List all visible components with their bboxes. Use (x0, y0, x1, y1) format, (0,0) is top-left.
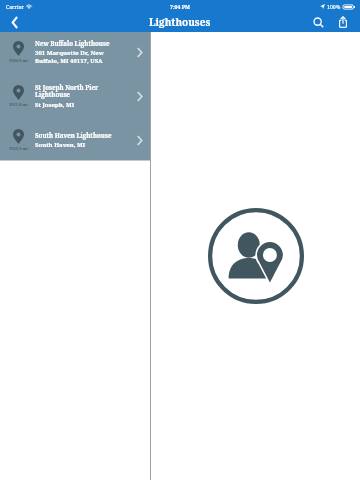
button[interactable]: 1925.3 mi (0, 120, 150, 160)
staticText: New Buffalo Lighthouse (35, 39, 110, 47)
staticText: Lighthouses (149, 15, 211, 29)
staticText: 1925.3 mi (9, 146, 28, 151)
staticText: 301 Marquette Dr, New (35, 49, 104, 57)
button[interactable]: 1904.0 mi (0, 32, 150, 72)
staticText: 1925.8 mi (9, 102, 28, 107)
staticText: St Joseph North Pier Lighthouse (35, 83, 99, 99)
staticText: 7:04 PM (170, 3, 190, 10)
button[interactable]: Search (306, 12, 330, 32)
button[interactable]: Share (330, 12, 356, 32)
staticText: Buffalo, MI 49117, USA (35, 57, 103, 65)
staticText: Carrier (6, 3, 24, 10)
staticText: St Joseph, MI (35, 101, 75, 109)
staticText: South Haven Lighthouse (35, 131, 112, 139)
staticText: South Haven, MI (35, 141, 86, 149)
button[interactable]: Back (0, 12, 30, 32)
button[interactable]: 1925.8 mi (0, 76, 150, 116)
staticText: 1904.0 mi (9, 58, 28, 63)
staticText: 100% (327, 3, 341, 10)
